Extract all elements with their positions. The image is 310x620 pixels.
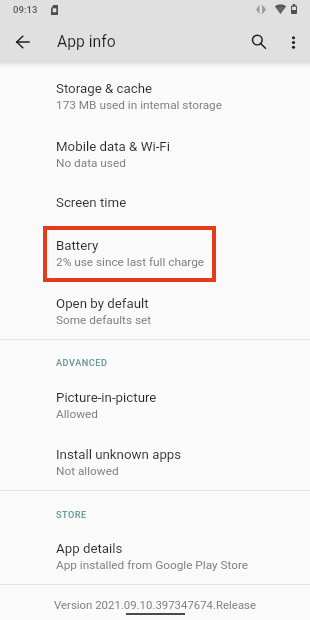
button[interactable]: Picture-in-picture [0, 373, 310, 430]
staticText: ADVANCED [56, 357, 108, 368]
other: Wi-Fi [275, 5, 286, 14]
staticText: Picture-in-picture [56, 390, 157, 406]
button[interactable]: Open by default [0, 279, 310, 339]
button[interactable]: Mobile data & Wi-Fi [0, 122, 310, 178]
button[interactable]: Back [4, 24, 40, 60]
staticText: Version 2021.09.10.397347674.Release [0, 598, 310, 611]
staticText: Not allowed [56, 464, 119, 478]
staticText: 173 MB used in internal storage [56, 98, 222, 112]
staticText: Some defaults set [56, 313, 152, 327]
button[interactable]: Install unknown apps [0, 430, 310, 490]
button[interactable]: Screen time [0, 178, 310, 221]
staticText: Storage & cache [56, 81, 153, 97]
staticText: Install unknown apps [56, 447, 182, 463]
staticText: 09:13 [13, 4, 38, 15]
staticText: App info [57, 32, 116, 50]
button[interactable]: More options [275, 24, 310, 60]
button[interactable]: Battery [0, 221, 310, 279]
staticText: Screen time [56, 195, 127, 211]
staticText: Battery [56, 238, 99, 254]
staticText: No data used [56, 156, 126, 170]
button[interactable]: Search [241, 24, 277, 60]
staticText: Open by default [56, 296, 149, 312]
staticText: Mobile data & Wi-Fi [56, 139, 170, 155]
staticText: Allowed [56, 407, 98, 421]
staticText: STORE [56, 509, 87, 520]
button[interactable]: App details [0, 524, 310, 584]
staticText: 2% use since last full charge [56, 255, 205, 269]
button[interactable]: Storage & cache [0, 64, 310, 122]
other: Battery [291, 4, 297, 14]
other: Data saver [256, 5, 266, 14]
staticText: App details [56, 541, 123, 557]
staticText: App installed from Google Play Store [56, 558, 249, 572]
